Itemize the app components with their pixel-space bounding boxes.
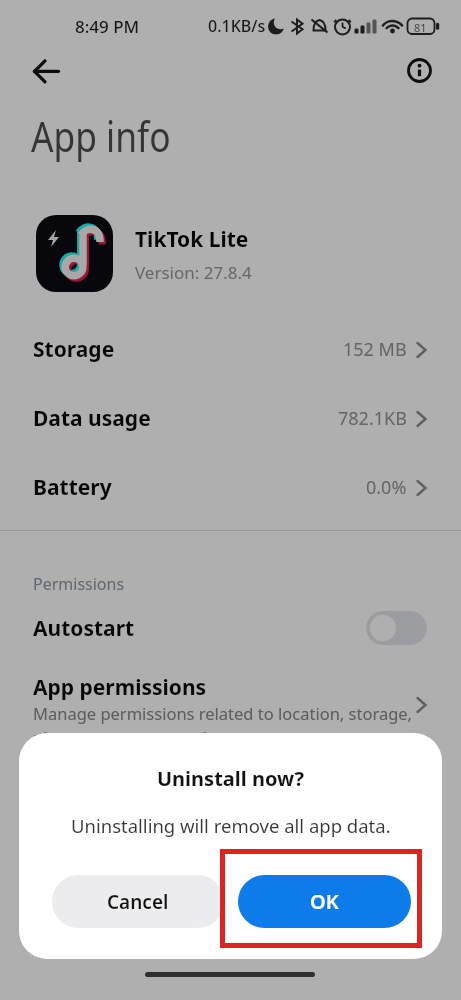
button[interactable] <box>22 53 70 90</box>
button[interactable]: App permissions <box>0 662 461 752</box>
staticText: 8:49 PM <box>75 15 140 38</box>
button[interactable]: Battery <box>0 453 461 522</box>
staticText: Cancel <box>107 889 169 915</box>
staticText: 0.1KB/s <box>208 15 266 37</box>
staticText: TikTok Lite <box>135 225 249 254</box>
staticText: App info <box>31 107 171 164</box>
staticText: 81 <box>414 20 427 35</box>
staticText: Autostart <box>33 614 135 643</box>
staticText: Permissions <box>33 573 125 595</box>
button[interactable]: Data usage <box>0 384 461 453</box>
staticText: 0.0% <box>366 475 407 500</box>
staticText: phone, messages, and contacts <box>33 726 277 748</box>
staticText: Version: 27.8.4 <box>135 261 252 284</box>
staticText: 782.1KB <box>338 406 407 431</box>
staticText: Storage <box>33 335 115 364</box>
button[interactable]: Storage <box>0 315 461 384</box>
staticText: 152 MB <box>343 337 407 362</box>
staticText: Battery <box>33 473 112 502</box>
staticText: Uninstalling will remove all app data. <box>71 813 391 838</box>
button[interactable]: Cancel <box>52 875 224 928</box>
button[interactable] <box>404 55 435 86</box>
staticText: OK <box>310 888 339 915</box>
staticText: Data usage <box>33 404 151 433</box>
staticText: App permissions <box>33 673 207 702</box>
button[interactable]: Autostart <box>0 594 461 662</box>
button[interactable]: OK <box>238 875 411 928</box>
staticText: Manage permissions related to location, … <box>33 702 413 724</box>
staticText: Uninstall now? <box>157 765 305 792</box>
